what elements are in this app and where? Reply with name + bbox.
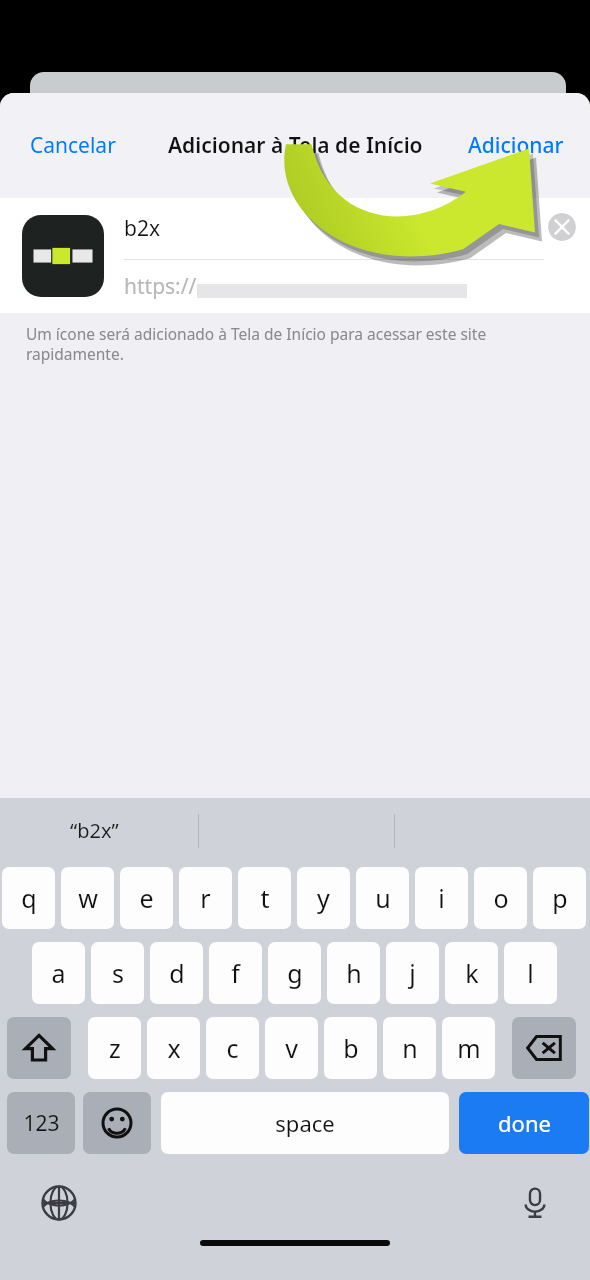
staticText: c bbox=[226, 1031, 239, 1065]
staticText: Adicionar bbox=[468, 131, 564, 160]
button[interactable]: Limpar texto bbox=[548, 213, 576, 241]
staticText: y bbox=[317, 881, 330, 915]
button[interactable]: 123 bbox=[7, 1092, 75, 1154]
staticText: j bbox=[409, 956, 416, 990]
staticText: p bbox=[552, 881, 568, 915]
button[interactable]: z bbox=[88, 1017, 141, 1079]
staticText: “b2x” bbox=[70, 817, 119, 844]
button[interactable]: b bbox=[324, 1017, 377, 1079]
button[interactable]: l bbox=[504, 942, 557, 1004]
staticText: d bbox=[169, 956, 185, 990]
button[interactable]: w bbox=[61, 867, 114, 929]
button[interactable]: d bbox=[150, 942, 203, 1004]
staticText: Cancelar bbox=[30, 131, 116, 160]
staticText: h bbox=[346, 956, 362, 990]
staticText: v bbox=[285, 1031, 298, 1065]
staticText: r bbox=[200, 881, 211, 915]
staticText: 123 bbox=[23, 1109, 60, 1138]
button[interactable]: Cancelar bbox=[14, 123, 132, 168]
button[interactable]: g bbox=[268, 942, 321, 1004]
button[interactable]: s bbox=[91, 942, 144, 1004]
staticText: n bbox=[402, 1031, 418, 1065]
button[interactable]: m bbox=[442, 1017, 495, 1079]
button[interactable]: i bbox=[415, 867, 468, 929]
staticText: done bbox=[498, 1108, 551, 1138]
button[interactable]: x bbox=[147, 1017, 200, 1079]
staticText: z bbox=[109, 1031, 121, 1065]
staticText: q bbox=[21, 881, 37, 915]
button[interactable]: h bbox=[327, 942, 380, 1004]
button[interactable]: k bbox=[445, 942, 498, 1004]
button[interactable]: u bbox=[356, 867, 409, 929]
button[interactable]: done bbox=[459, 1092, 589, 1154]
button[interactable]: f bbox=[209, 942, 262, 1004]
button[interactable]: Emoji bbox=[83, 1092, 151, 1154]
button[interactable]: j bbox=[386, 942, 439, 1004]
staticText: m bbox=[457, 1031, 481, 1065]
staticText: k bbox=[465, 956, 479, 990]
staticText: a bbox=[51, 956, 66, 990]
staticText: e bbox=[139, 881, 154, 915]
button[interactable]: o bbox=[474, 867, 527, 929]
button[interactable]: Shift bbox=[7, 1017, 71, 1079]
button[interactable]: q bbox=[2, 867, 55, 929]
staticText: b2x bbox=[124, 214, 161, 243]
other: Seta indicativa bbox=[265, 140, 565, 280]
button[interactable]: c bbox=[206, 1017, 259, 1079]
button[interactable]: p bbox=[533, 867, 586, 929]
staticText: o bbox=[493, 881, 509, 915]
button[interactable]: r bbox=[179, 867, 232, 929]
button[interactable]: n bbox=[383, 1017, 436, 1079]
staticText: x bbox=[167, 1031, 181, 1065]
staticText: Adicionar à Tela de Início bbox=[168, 131, 423, 160]
button[interactable]: Apagar bbox=[512, 1017, 576, 1079]
button[interactable]: Ditado bbox=[510, 1178, 560, 1228]
staticText: space bbox=[275, 1108, 335, 1138]
staticText: g bbox=[287, 956, 303, 990]
button[interactable]: e bbox=[120, 867, 173, 929]
button[interactable]: Mudar idioma bbox=[34, 1178, 84, 1228]
staticText: Um ícone será adicionado à Tela de Iníci… bbox=[26, 323, 564, 365]
button[interactable]: Adicionar bbox=[456, 123, 576, 168]
button[interactable]: t bbox=[238, 867, 291, 929]
button[interactable]: space bbox=[161, 1092, 449, 1154]
button[interactable]: v bbox=[265, 1017, 318, 1079]
staticText: w bbox=[78, 881, 98, 915]
staticText: b bbox=[343, 1031, 359, 1065]
staticText: t bbox=[260, 881, 270, 915]
staticText: f bbox=[231, 956, 240, 990]
button[interactable]: a bbox=[32, 942, 85, 1004]
staticText: l bbox=[527, 956, 534, 990]
staticText: u bbox=[375, 881, 391, 915]
staticText: https:// bbox=[124, 272, 197, 301]
staticText: s bbox=[112, 956, 124, 990]
button[interactable]: y bbox=[297, 867, 350, 929]
staticText: i bbox=[438, 881, 445, 915]
